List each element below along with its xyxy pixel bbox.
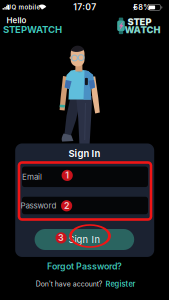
staticText: Forgot Password? xyxy=(47,261,122,271)
staticText: STEPWATCH xyxy=(3,24,62,35)
staticText: Sign In xyxy=(68,148,100,159)
staticText: WATCH xyxy=(124,24,160,35)
staticText: Sign In xyxy=(68,234,100,245)
button[interactable]: Forgot Password? xyxy=(47,261,122,271)
staticText: Email xyxy=(22,172,42,182)
staticText: 3 xyxy=(58,233,64,243)
button[interactable]: Sign In xyxy=(35,229,134,250)
staticText: 58% xyxy=(133,3,150,12)
staticText: Don't have account? xyxy=(36,280,103,288)
staticText: 2 xyxy=(64,201,69,211)
button[interactable]: Register xyxy=(105,279,135,288)
staticText: UQ mobile xyxy=(7,4,41,11)
staticText: Register xyxy=(105,279,135,288)
staticText: STEP xyxy=(127,16,151,27)
button[interactable]: Email xyxy=(22,167,148,187)
staticText: Hello xyxy=(6,15,26,25)
staticText: 1 xyxy=(65,170,69,181)
staticText: Password xyxy=(20,201,56,210)
button[interactable]: Password xyxy=(22,197,148,214)
staticText: 17:07 xyxy=(73,2,96,12)
